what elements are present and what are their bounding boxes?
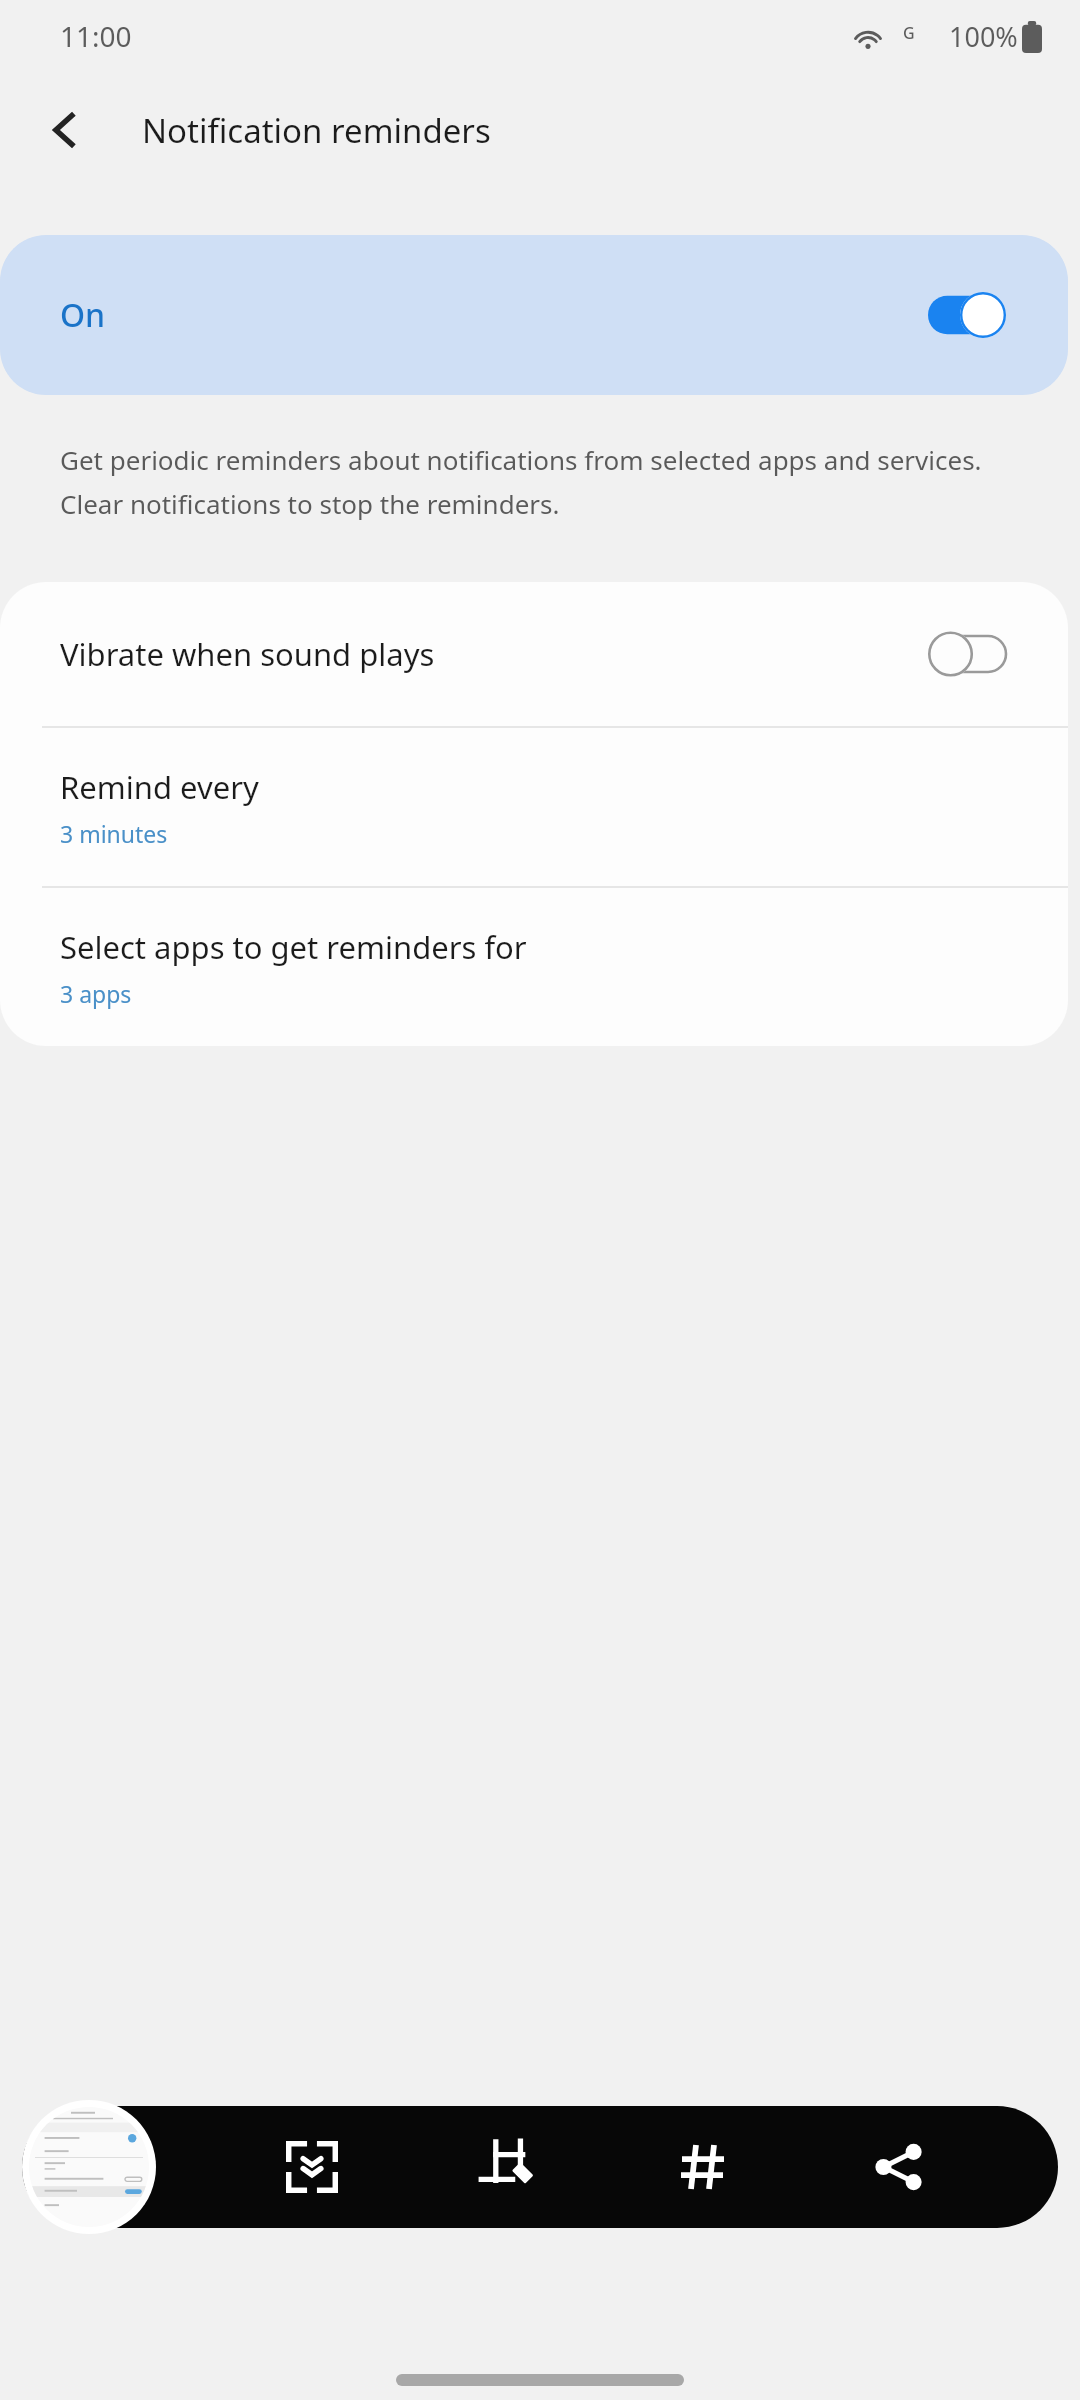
- staticText: Vibrate when sound plays: [60, 633, 928, 675]
- staticText: 3 minutes: [60, 818, 168, 849]
- staticText: G: [903, 22, 915, 44]
- button[interactable]: Screenshot preview: [22, 2100, 156, 2234]
- button[interactable]: Tags: [648, 2112, 758, 2222]
- button[interactable]: On: [0, 235, 1068, 395]
- staticText: On: [60, 293, 106, 337]
- staticText: Get periodic reminders about notificatio…: [60, 442, 1018, 521]
- staticText: Notification reminders: [142, 108, 491, 153]
- staticText: 100%: [949, 18, 1018, 55]
- button[interactable]: Share: [843, 2112, 953, 2222]
- staticText: 3 apps: [60, 978, 132, 1009]
- button[interactable]: Select apps to get reminders for: [0, 888, 1068, 1046]
- button[interactable]: Remind every: [0, 728, 1068, 886]
- button[interactable]: Vibrate when sound plays: [0, 582, 1068, 726]
- button[interactable]: Crop and edit: [452, 2112, 562, 2222]
- staticText: Remind every: [60, 766, 259, 808]
- staticText: 11:00: [60, 17, 132, 55]
- staticText: Select apps to get reminders for: [60, 926, 527, 968]
- button[interactable]: Scroll capture: [257, 2112, 367, 2222]
- button[interactable]: Back: [30, 95, 100, 165]
